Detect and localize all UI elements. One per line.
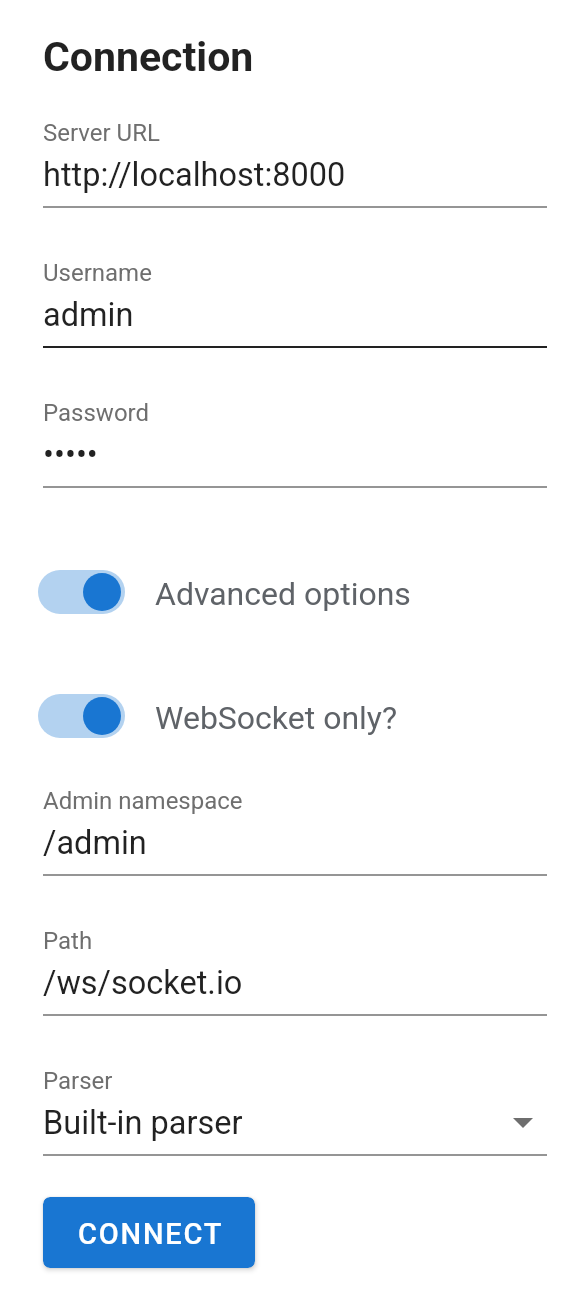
staticText: Connection [43, 33, 254, 81]
staticText: Admin namespace [43, 787, 243, 815]
button[interactable]: CONNECT [43, 1197, 255, 1268]
staticText: WebSocket only? [155, 699, 398, 737]
staticText: Password [43, 399, 150, 427]
staticText: Path [43, 927, 93, 955]
staticText: http://localhost:8000 [43, 156, 346, 194]
button[interactable]: WebSocket only? [30, 684, 460, 748]
staticText: CONNECT [78, 1217, 224, 1251]
button[interactable]: Password [43, 391, 547, 488]
staticText: Built-in parser [43, 1104, 243, 1142]
staticText: Server URL [43, 119, 160, 147]
staticText: /ws/socket.io [43, 964, 243, 1002]
staticText: admin [43, 296, 134, 334]
button[interactable]: Server URL [43, 111, 547, 208]
staticText: Username [43, 259, 152, 287]
button[interactable]: Username [43, 251, 547, 348]
button[interactable]: Parser [43, 1059, 547, 1156]
staticText: ••••• [43, 436, 98, 474]
staticText: Advanced options [155, 575, 411, 613]
staticText: /admin [43, 824, 147, 862]
staticText: Parser [43, 1067, 113, 1095]
other: Open Parser menu [513, 1118, 533, 1128]
button[interactable]: Path [43, 919, 547, 1016]
button[interactable]: Admin namespace [43, 779, 547, 876]
button[interactable]: Advanced options [30, 560, 460, 624]
